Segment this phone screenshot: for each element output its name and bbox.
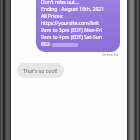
button[interactable]: That's so cool! — [17, 63, 64, 78]
staticText: That's so cool! — [23, 67, 58, 74]
staticText: Delivered — [102, 52, 119, 57]
staticText: All Prices: — [41, 13, 64, 20]
staticText: https://yoursite.com/link — [41, 20, 99, 27]
staticText: 9am to 4pm (EDT) Sat-Sun — [41, 34, 102, 41]
staticText: Ending : August 16th, 2021 — [41, 6, 104, 13]
staticText: 9am to 5pm (EDT) Mon-Fri — [41, 27, 103, 34]
button[interactable]: Book now! — [36, 0, 120, 52]
staticText: Don't miss out... — [41, 0, 79, 6]
staticText: 802- — [41, 41, 52, 48]
